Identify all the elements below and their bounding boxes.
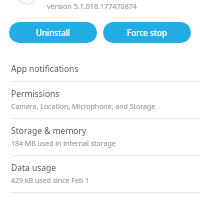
- staticText: App notifications: [11, 63, 79, 75]
- button[interactable]: Uninstall: [9, 22, 97, 43]
- staticText: version 5.1.018.177470874: [47, 1, 137, 11]
- button[interactable]: App notifications: [0, 57, 200, 82]
- staticText: Storage & memory: [11, 125, 87, 137]
- staticText: Data usage: [11, 162, 57, 174]
- staticText: 429 kB used since Feb 1: [11, 176, 90, 186]
- button[interactable]: Force stop: [103, 22, 191, 43]
- staticText: 184 MB used in internal storage: [11, 139, 116, 149]
- staticText: Force stop: [127, 27, 167, 38]
- button[interactable]: Data usage: [0, 156, 200, 193]
- staticText: Permissions: [11, 88, 60, 100]
- staticText: Uninstall: [36, 27, 70, 38]
- button[interactable]: Storage & memory: [0, 119, 200, 156]
- staticText: Camera, Location, Microphone, and Storag…: [11, 102, 156, 112]
- button[interactable]: Permissions: [0, 82, 200, 119]
